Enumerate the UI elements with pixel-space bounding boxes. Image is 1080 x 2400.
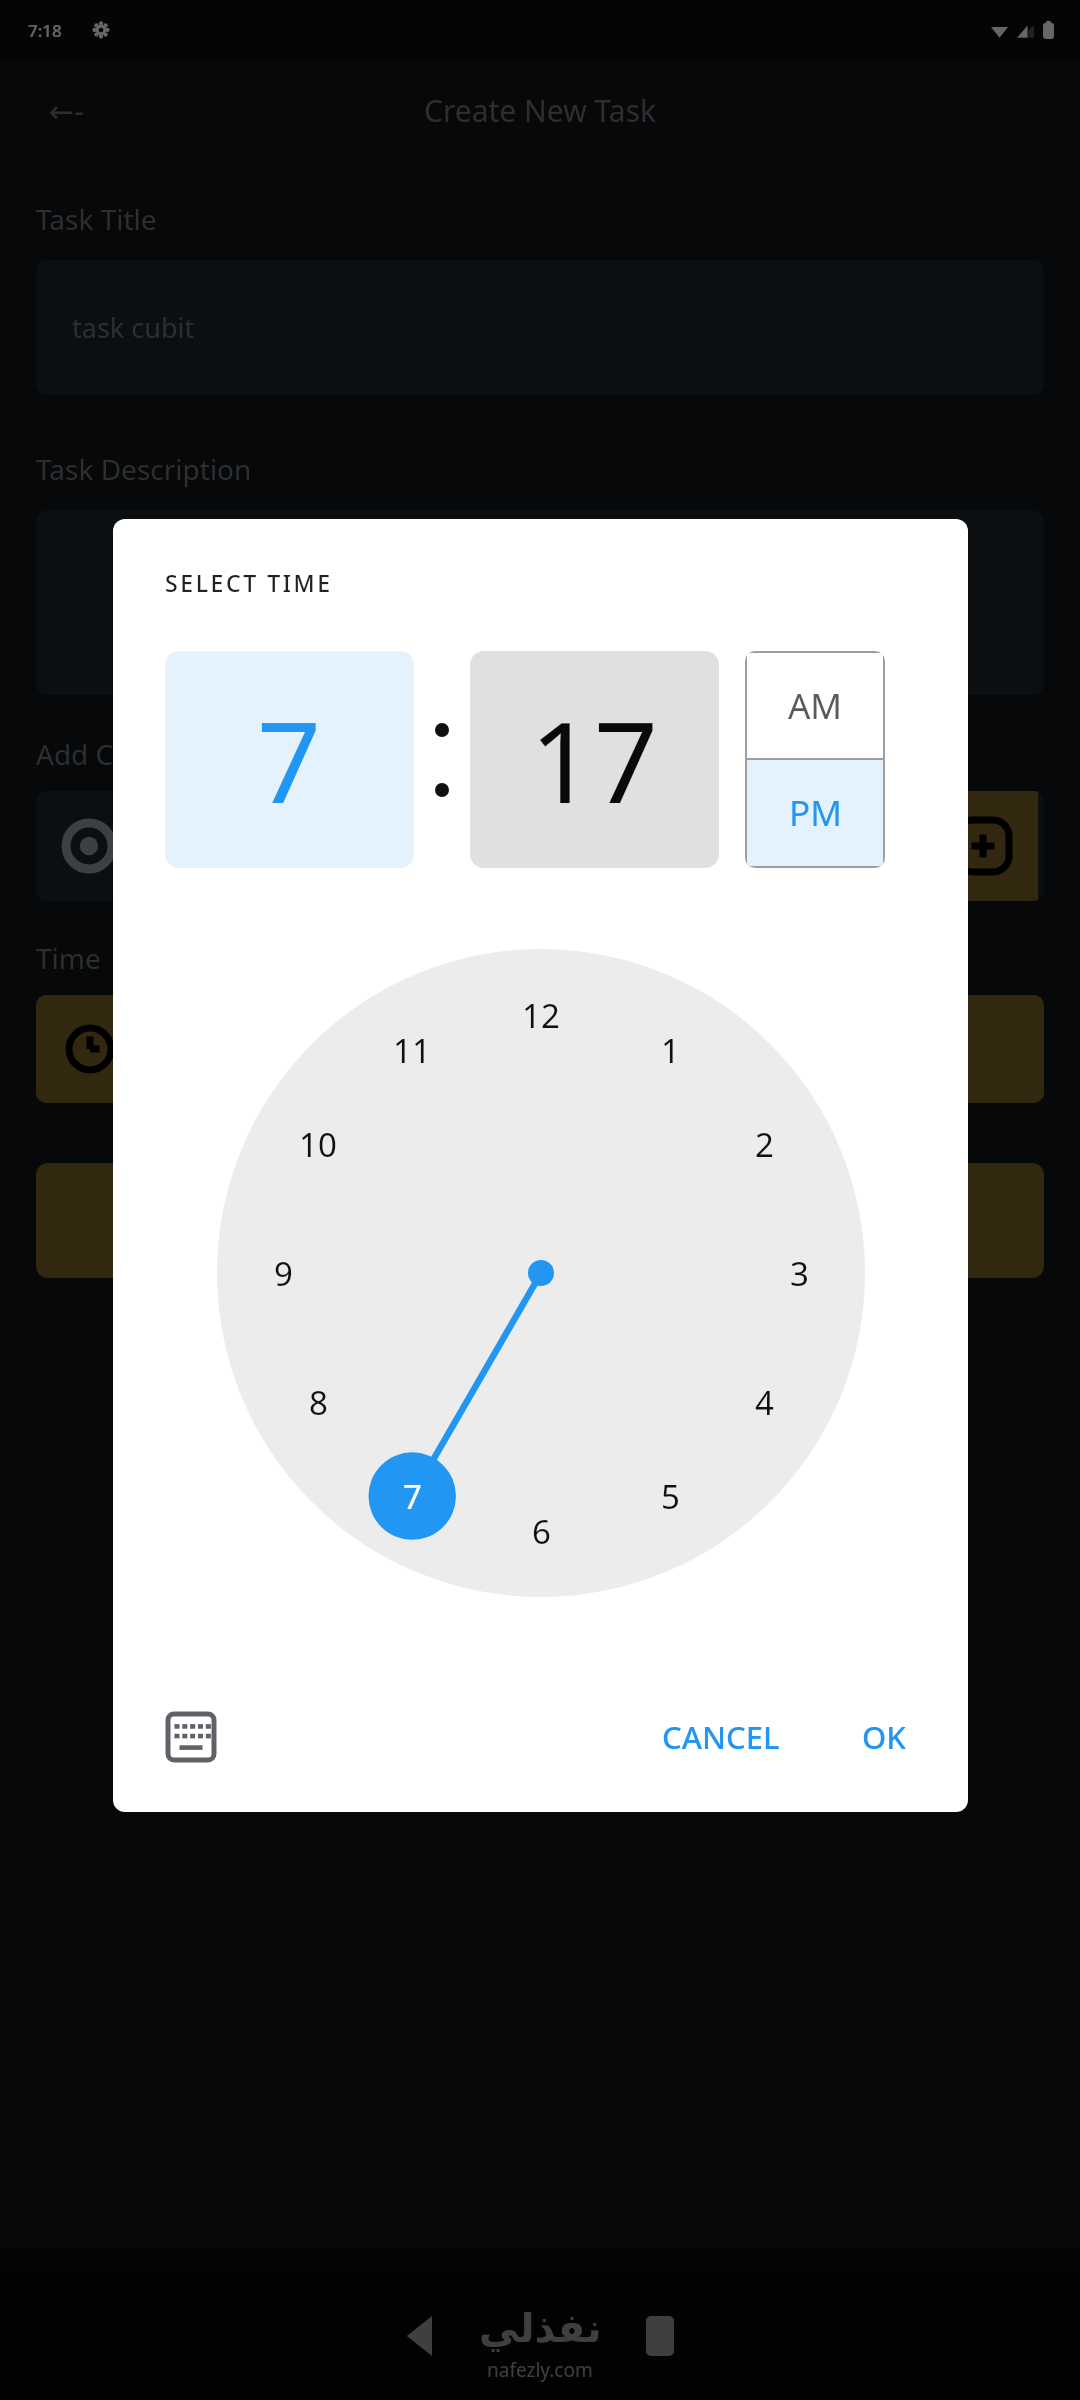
button[interactable]: 12	[507, 981, 575, 1049]
button[interactable]: 9	[249, 1239, 317, 1307]
staticText: 12	[522, 993, 560, 1038]
staticText: Time	[36, 939, 101, 977]
button[interactable]: CANCEL	[640, 1698, 802, 1776]
button[interactable]: OK	[840, 1698, 928, 1776]
staticText: SELECT TIME	[165, 567, 333, 598]
button[interactable]	[36, 791, 1044, 901]
staticText: 2	[755, 1122, 774, 1167]
button[interactable]: 1	[636, 1016, 704, 1084]
staticText: 17	[530, 683, 659, 836]
other: Recents	[646, 2316, 674, 2356]
button[interactable]: Switch to text input	[153, 1699, 229, 1775]
staticText: nafezly.com	[487, 2357, 593, 2383]
button[interactable]: 10	[284, 1110, 352, 1178]
button[interactable]: AM	[747, 653, 883, 758]
staticText: PM	[789, 789, 842, 837]
button[interactable]: 7	[378, 1462, 446, 1530]
other: Back	[402, 2316, 442, 2356]
staticText: AM	[788, 682, 843, 730]
button[interactable]: 2	[730, 1110, 798, 1178]
staticText: Task Description	[36, 450, 252, 488]
staticText: 7	[257, 683, 322, 836]
button[interactable]	[36, 510, 1044, 695]
button[interactable]: 8	[284, 1368, 352, 1436]
button[interactable]	[36, 995, 1044, 1103]
button[interactable]: 17	[470, 651, 719, 868]
staticText: 7:18	[28, 19, 62, 42]
staticText: Task Title	[36, 200, 157, 238]
staticText: 6	[532, 1509, 551, 1554]
staticText: 3	[790, 1251, 809, 1296]
staticText: نفذلي	[479, 2305, 602, 2352]
staticText: 8	[309, 1380, 328, 1425]
staticText: 4	[755, 1380, 774, 1425]
button[interactable]: 6	[507, 1497, 575, 1565]
button[interactable]: 11	[378, 1016, 446, 1084]
button[interactable]: 5	[636, 1462, 704, 1530]
button[interactable]: Back	[38, 82, 94, 138]
button[interactable]: 4	[730, 1368, 798, 1436]
button[interactable]: 7	[165, 651, 414, 868]
button[interactable]: 3	[765, 1239, 833, 1307]
staticText: 10	[299, 1122, 337, 1167]
staticText: 5	[661, 1474, 680, 1519]
staticText: 1	[661, 1028, 680, 1073]
button[interactable]	[36, 1163, 1044, 1278]
staticText: ←-	[49, 90, 84, 131]
staticText: Add Category	[36, 735, 215, 773]
staticText: 7	[403, 1474, 422, 1519]
staticText: 9	[274, 1251, 293, 1296]
button[interactable]: PM	[747, 760, 883, 866]
staticText: OK	[862, 1716, 906, 1758]
staticText: task cubit	[72, 309, 195, 346]
staticText: 11	[393, 1028, 431, 1073]
staticText: Create New Task	[424, 90, 657, 131]
staticText: CANCEL	[662, 1716, 780, 1758]
